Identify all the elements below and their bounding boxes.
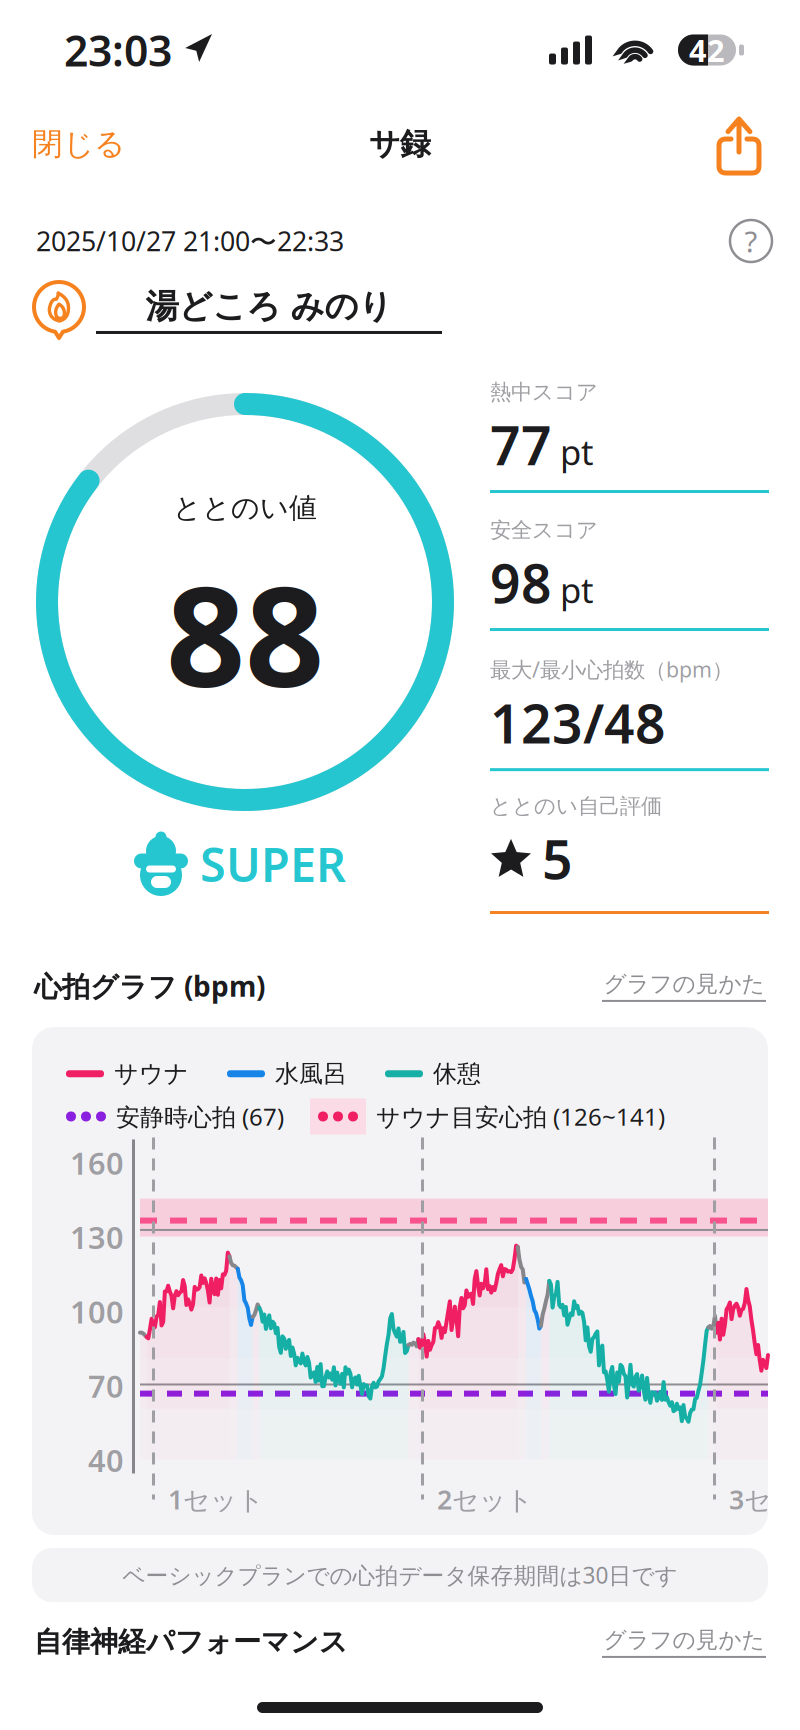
staticText: 100 xyxy=(70,1291,124,1332)
staticText: 130 xyxy=(70,1217,124,1257)
button[interactable]: 共有 xyxy=(710,113,768,175)
staticText: pt xyxy=(560,429,594,475)
staticText: グラフの見かた xyxy=(603,970,764,998)
staticText: ベーシックプランでの心拍データ保存期間は30日です xyxy=(122,1560,677,1590)
staticText: 40 xyxy=(88,1440,124,1480)
staticText: ととのい値 xyxy=(173,491,317,525)
staticText: 160 xyxy=(70,1142,124,1183)
staticText: 心拍グラフ (bpm) xyxy=(34,967,265,1005)
button[interactable]: 閉じる xyxy=(32,111,145,177)
staticText: 閉じる xyxy=(32,125,125,163)
staticText: 42 xyxy=(689,30,725,70)
staticText: 1セット xyxy=(168,1481,264,1517)
staticText: 98 xyxy=(490,547,552,618)
staticText: ととのい自己評価 xyxy=(490,793,662,819)
staticText: 自律神経パフォーマンス xyxy=(34,1625,348,1659)
staticText: 77 xyxy=(490,409,552,480)
staticText: SUPER xyxy=(200,833,346,895)
staticText: 123/48 xyxy=(490,687,666,758)
staticText: サウナ xyxy=(114,1059,189,1088)
staticText: 2セット xyxy=(437,1481,533,1517)
staticText: ? xyxy=(744,221,757,260)
staticText: 5 xyxy=(542,823,573,894)
staticText: 23:03 xyxy=(64,22,172,78)
button[interactable]: 湯どころ みのり xyxy=(96,286,442,334)
staticText: 88 xyxy=(166,541,324,725)
staticText: グラフの見かた xyxy=(603,1626,764,1654)
button[interactable]: ヘルプ xyxy=(730,220,772,262)
staticText: 3セ xyxy=(729,1481,771,1517)
staticText: サ録 xyxy=(369,125,431,163)
staticText: 安全スコア xyxy=(490,517,598,543)
staticText: 70 xyxy=(88,1365,124,1406)
staticText: 2025/10/27 21:00〜22:33 xyxy=(36,223,344,259)
staticText: 湯どころ みのり xyxy=(145,286,392,327)
staticText: 休憩 xyxy=(433,1059,481,1088)
staticText: 最大/最小心拍数（bpm） xyxy=(490,655,733,683)
button[interactable]: グラフの見かた xyxy=(602,1626,766,1658)
staticText: 安静時心拍 (67) xyxy=(116,1100,284,1132)
staticText: 熱中スコア xyxy=(490,379,598,405)
staticText: 水風呂 xyxy=(275,1059,347,1088)
button[interactable]: グラフの見かた xyxy=(602,970,766,1002)
staticText: サウナ目安心拍 (126~141) xyxy=(376,1100,665,1132)
staticText: pt xyxy=(560,567,594,613)
